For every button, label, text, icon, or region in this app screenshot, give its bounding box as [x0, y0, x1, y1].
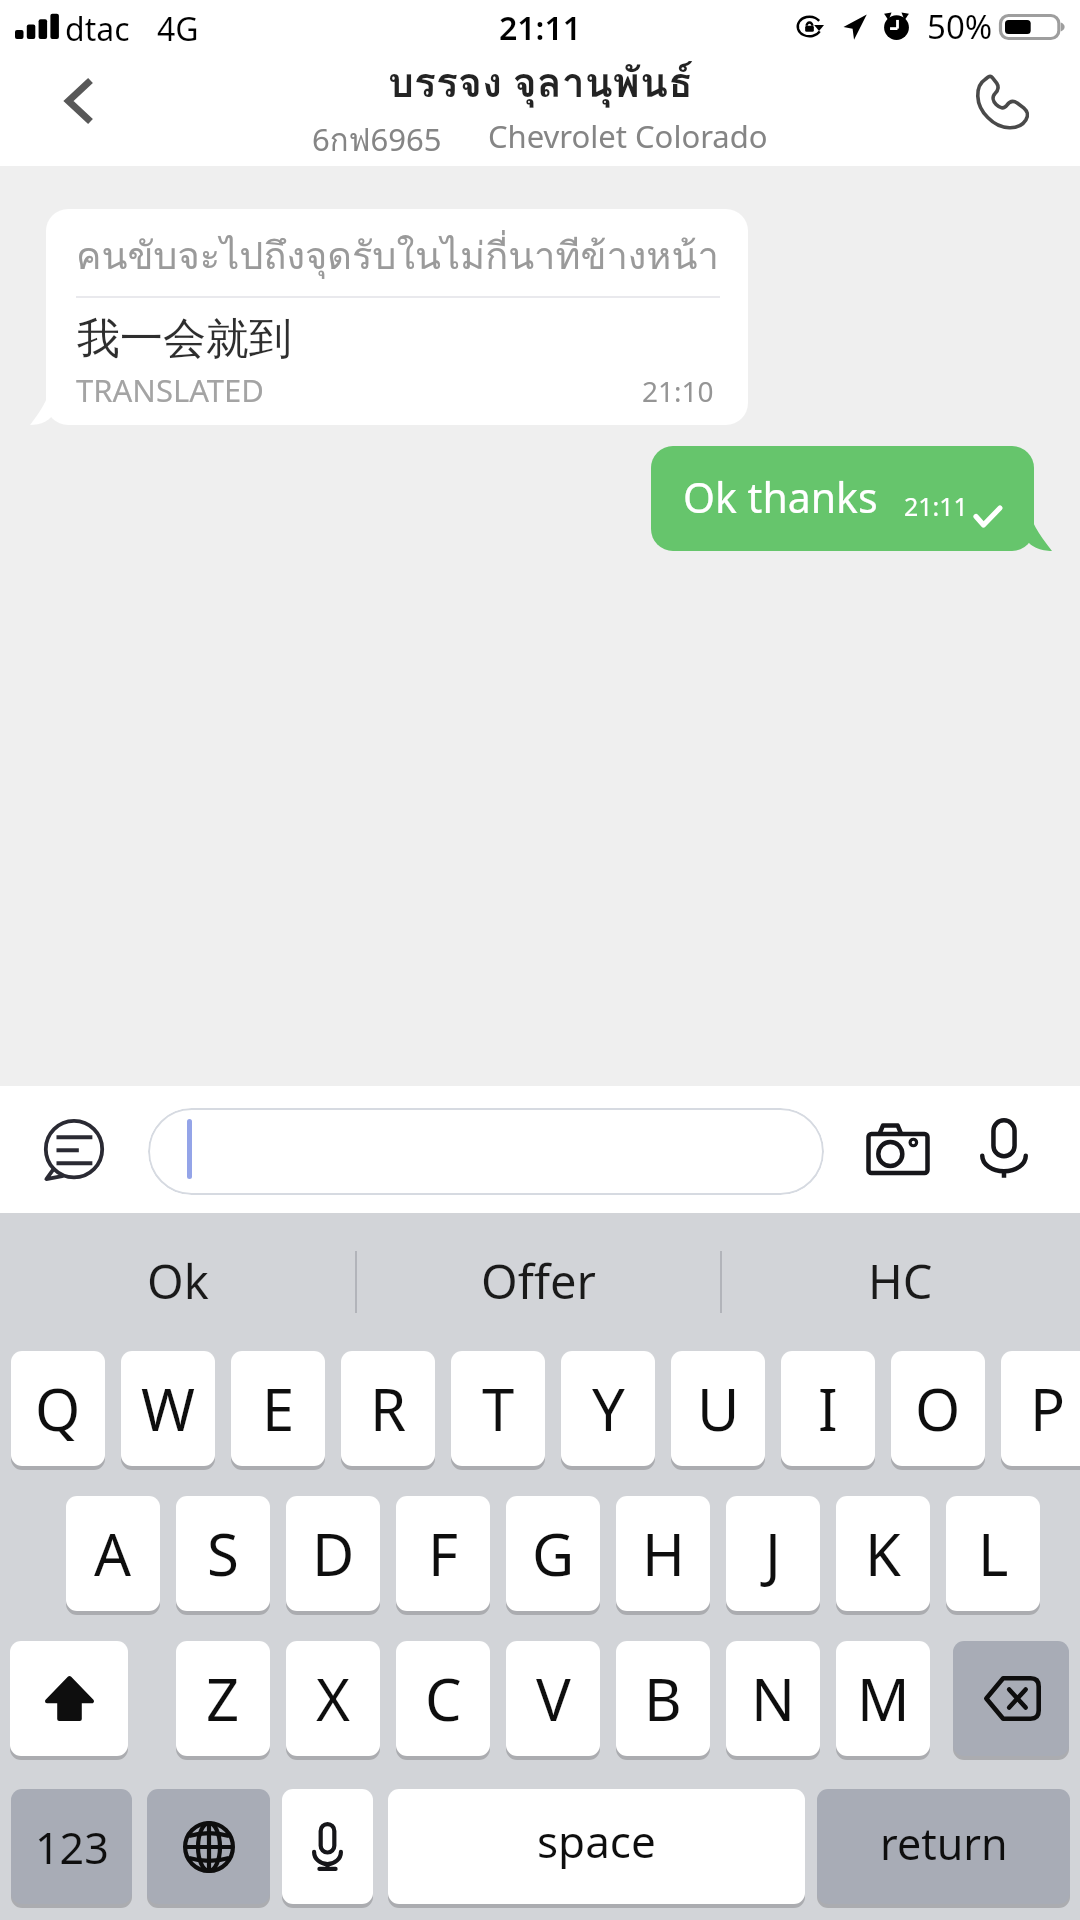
- staticText: S: [207, 1514, 239, 1593]
- button[interactable]: G: [506, 1496, 600, 1611]
- button[interactable]: X: [286, 1641, 380, 1756]
- staticText: V: [536, 1659, 571, 1738]
- button[interactable]: N: [726, 1641, 820, 1756]
- button[interactable]: F: [396, 1496, 490, 1611]
- staticText: N: [751, 1659, 796, 1738]
- button[interactable]: J: [726, 1496, 820, 1611]
- button[interactable]: คนขับจะไปถึงจุดรับในไม่กี่นาทีข้างหน้า: [46, 209, 748, 425]
- staticText: H: [642, 1514, 685, 1593]
- staticText: F: [428, 1514, 459, 1593]
- button[interactable]: V: [506, 1641, 600, 1756]
- staticText: U: [697, 1369, 740, 1448]
- button[interactable]: A: [66, 1496, 160, 1611]
- staticText: 6กฟ6965: [312, 115, 442, 158]
- button[interactable]: Q: [11, 1351, 105, 1466]
- button[interactable]: I: [781, 1351, 875, 1466]
- staticText: return: [880, 1814, 1008, 1873]
- button[interactable]: E: [231, 1351, 325, 1466]
- staticText: 21:11: [499, 6, 582, 50]
- button[interactable]: Ok: [0, 1213, 356, 1338]
- staticText: E: [262, 1369, 295, 1448]
- button[interactable]: Call: [950, 58, 1080, 166]
- staticText: HC: [868, 1249, 933, 1313]
- staticText: D: [312, 1514, 355, 1593]
- staticText: I: [818, 1369, 838, 1448]
- staticText: dtac: [65, 7, 130, 51]
- staticText: 21:11: [904, 489, 968, 523]
- staticText: Ok: [147, 1249, 209, 1313]
- staticText: X: [316, 1659, 350, 1738]
- button[interactable]: 123: [11, 1789, 132, 1904]
- button[interactable]: return: [817, 1789, 1070, 1904]
- staticText: 21:10: [642, 372, 714, 410]
- button[interactable]: Y: [561, 1351, 655, 1466]
- button[interactable]: Switch keyboard: [147, 1789, 270, 1904]
- staticText: J: [765, 1514, 781, 1593]
- button[interactable]: R: [341, 1351, 435, 1466]
- staticText: Y: [592, 1369, 625, 1448]
- staticText: Offer: [481, 1249, 596, 1313]
- button[interactable]: S: [176, 1496, 270, 1611]
- staticText: คนขับจะไปถึงจุดรับในไม่กี่นาทีข้างหน้า: [76, 225, 719, 285]
- button[interactable]: Z: [176, 1641, 270, 1756]
- staticText: 4G: [157, 7, 199, 51]
- staticText: B: [644, 1659, 682, 1738]
- button[interactable]: L: [946, 1496, 1040, 1611]
- button[interactable]: Ok thanks: [651, 446, 1034, 551]
- button[interactable]: space: [388, 1789, 805, 1904]
- staticText: space: [537, 1811, 656, 1871]
- staticText: บรรจง จุลานุพันธ์: [388, 50, 693, 115]
- button[interactable]: H: [616, 1496, 710, 1611]
- staticText: R: [370, 1369, 407, 1448]
- staticText: C: [425, 1659, 462, 1738]
- button[interactable]: Backspace: [953, 1641, 1069, 1756]
- staticText: Ok thanks: [683, 469, 878, 525]
- staticText: P: [1030, 1369, 1066, 1448]
- button[interactable]: C: [396, 1641, 490, 1756]
- button[interactable]: P: [1001, 1351, 1080, 1466]
- staticText: O: [915, 1369, 961, 1448]
- button[interactable]: HC: [721, 1213, 1080, 1338]
- staticText: Z: [206, 1659, 240, 1738]
- staticText: TRANSLATED: [76, 369, 264, 411]
- staticText: 123: [35, 1818, 109, 1877]
- button[interactable]: W: [121, 1351, 215, 1466]
- staticText: T: [482, 1369, 515, 1448]
- button[interactable]: Message input: [148, 1108, 824, 1195]
- staticText: G: [532, 1514, 575, 1593]
- button[interactable]: Camera: [853, 1104, 943, 1194]
- button[interactable]: Shift: [10, 1641, 128, 1756]
- button[interactable]: Voice message: [959, 1104, 1049, 1194]
- button[interactable]: Back: [0, 58, 150, 166]
- button[interactable]: O: [891, 1351, 985, 1466]
- staticText: W: [141, 1369, 195, 1448]
- staticText: K: [865, 1514, 901, 1593]
- staticText: M: [857, 1659, 910, 1738]
- staticText: A: [94, 1514, 132, 1593]
- button[interactable]: M: [836, 1641, 930, 1756]
- staticText: Chevrolet Colorado: [488, 115, 768, 157]
- button[interactable]: B: [616, 1641, 710, 1756]
- staticText: L: [978, 1514, 1009, 1593]
- staticText: 50%: [927, 4, 993, 49]
- button[interactable]: Quick replies: [28, 1104, 118, 1194]
- button[interactable]: D: [286, 1496, 380, 1611]
- button[interactable]: U: [671, 1351, 765, 1466]
- button[interactable]: Dictation: [282, 1789, 373, 1904]
- button[interactable]: Offer: [356, 1213, 721, 1338]
- button[interactable]: T: [451, 1351, 545, 1466]
- button[interactable]: K: [836, 1496, 930, 1611]
- staticText: Q: [35, 1369, 81, 1448]
- staticText: 我一会就到: [77, 312, 292, 366]
